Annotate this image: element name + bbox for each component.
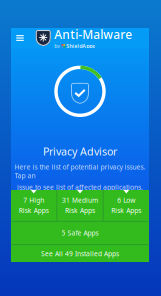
staticText: Risk Apps	[65, 206, 95, 215]
staticText: 5 Safe Apps	[61, 229, 98, 237]
staticText: Risk Apps	[19, 206, 49, 215]
button[interactable]: 7 High	[11, 190, 56, 221]
staticText: See All 49 Installed Apps	[41, 249, 119, 258]
staticText: 31 Medium	[62, 196, 98, 205]
button[interactable]: 6 Low	[104, 190, 149, 221]
staticText: Here is the list of potential privacy is…	[14, 162, 145, 180]
button[interactable]: 31 Medium	[57, 190, 103, 221]
staticText: ShieldApps	[66, 42, 95, 49]
staticText: 6 Low	[117, 196, 135, 205]
staticText: 7 High	[23, 196, 44, 205]
button[interactable]: Menu	[11, 29, 29, 47]
staticText: Risk Apps	[111, 206, 141, 215]
button[interactable]: 5 Safe Apps	[11, 222, 149, 244]
staticText: issue to see list of affected applicatio…	[17, 183, 143, 192]
staticText: Privacy Advisor	[43, 144, 117, 158]
staticText: by	[54, 42, 60, 49]
staticText: Anti-Malware	[54, 26, 132, 42]
button[interactable]: See All 49 Installed Apps	[11, 245, 149, 262]
